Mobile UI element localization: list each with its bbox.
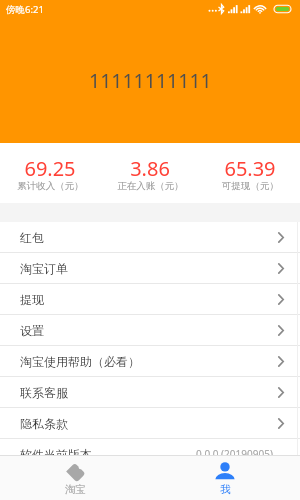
staticText: 69.25: [24, 155, 76, 182]
staticText: 可提现（元）: [222, 180, 279, 192]
button[interactable]: 3.86: [100, 143, 200, 203]
staticText: 傍晚6:21: [6, 3, 44, 16]
button[interactable]: 软件当前版本: [0, 439, 300, 470]
staticText: 累计收入（元）: [17, 180, 84, 192]
staticText: 隐私条款: [20, 416, 68, 431]
staticText: 65.39: [224, 155, 276, 182]
button[interactable]: 淘宝使用帮助（必看）: [0, 346, 300, 377]
button[interactable]: 我: [150, 456, 300, 500]
staticText: 3.86: [130, 155, 170, 182]
button[interactable]: 设置: [0, 315, 300, 346]
staticText: 我: [220, 483, 231, 496]
staticText: 淘宝订单: [20, 261, 68, 276]
button[interactable]: 红包: [0, 222, 300, 253]
button[interactable]: 淘宝订单: [0, 253, 300, 284]
staticText: 设置: [20, 323, 44, 338]
button[interactable]: 隐私条款: [0, 408, 300, 439]
button[interactable]: 提现: [0, 284, 300, 315]
staticText: 淘宝: [65, 483, 86, 496]
button[interactable]: 65.39: [200, 143, 300, 203]
staticText: 红包: [20, 230, 44, 245]
staticText: 淘宝使用帮助（必看）: [20, 354, 140, 369]
button[interactable]: 联系客服: [0, 377, 300, 408]
staticText: 正在入账（元）: [117, 180, 184, 192]
staticText: 提现: [20, 292, 44, 307]
staticText: 软件当前版本: [20, 447, 92, 462]
staticText: 0.0.0 (20190905): [196, 447, 273, 461]
button[interactable]: 69.25: [0, 143, 100, 203]
staticText: 11111111111: [89, 67, 212, 94]
staticText: 联系客服: [20, 385, 68, 400]
button[interactable]: 淘宝: [0, 456, 150, 500]
